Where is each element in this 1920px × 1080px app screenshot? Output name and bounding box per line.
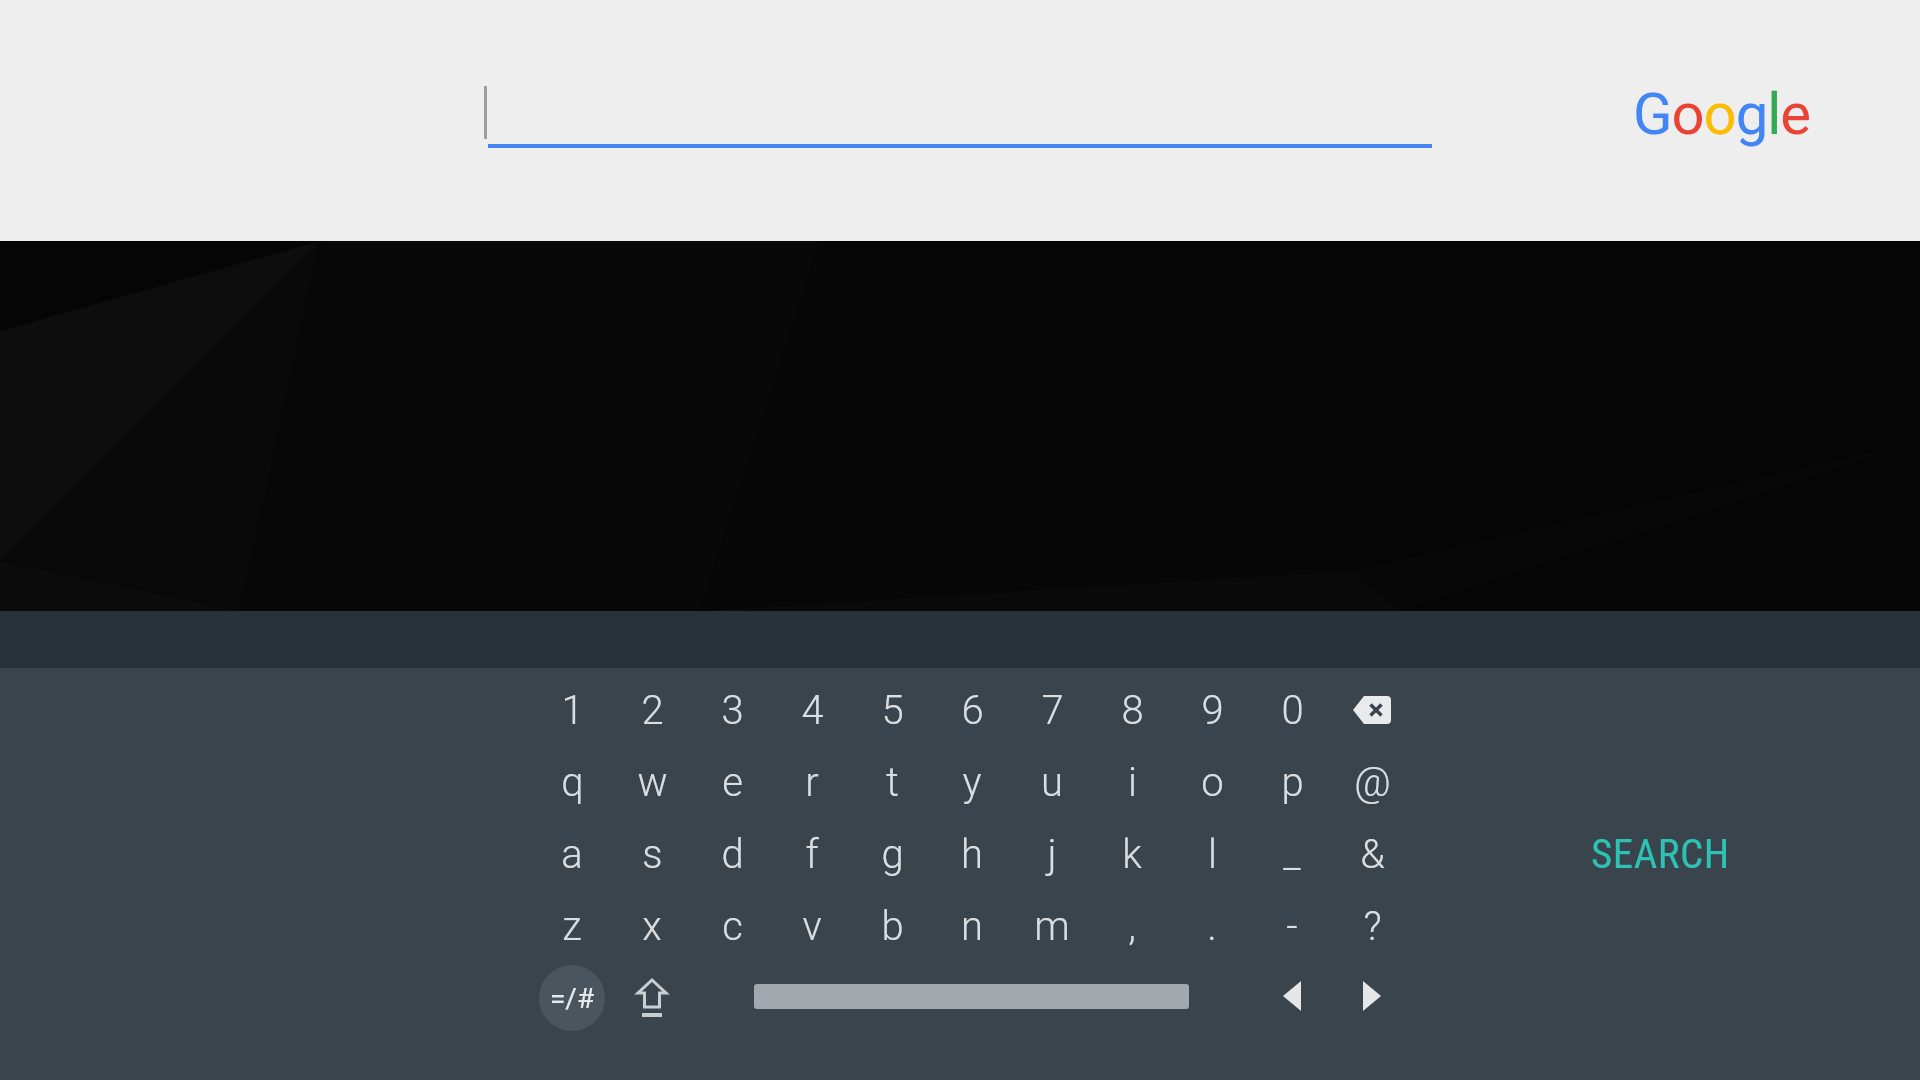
staticText: 9 [1201, 687, 1224, 734]
button[interactable]: i [1092, 746, 1172, 818]
button[interactable]: v [772, 890, 852, 962]
button[interactable]: y [932, 746, 1012, 818]
button[interactable]: c [692, 890, 772, 962]
button[interactable]: 7 [1012, 674, 1092, 746]
staticText: 8 [1121, 687, 1144, 734]
staticText: s [642, 831, 663, 878]
staticText: 3 [721, 687, 744, 734]
button[interactable] [1332, 962, 1412, 1034]
button[interactable]: s [612, 818, 692, 890]
button[interactable]: 6 [932, 674, 1012, 746]
staticText: 0 [1281, 687, 1304, 734]
staticText: i [1128, 759, 1137, 806]
button[interactable]: b [852, 890, 932, 962]
staticText: x [642, 903, 662, 950]
button[interactable]: d [692, 818, 772, 890]
button[interactable]: h [932, 818, 1012, 890]
staticText: z [562, 903, 582, 950]
staticText: , [1128, 903, 1136, 950]
staticText: r [805, 759, 819, 806]
staticText: q [561, 759, 584, 806]
staticText: a [561, 831, 583, 878]
staticText: y [962, 759, 982, 806]
staticText: h [961, 831, 983, 878]
staticText: v [802, 903, 822, 950]
staticText: o [1201, 759, 1224, 806]
button[interactable]: SEARCH [1565, 818, 1755, 890]
button[interactable]: _ [1252, 818, 1332, 890]
button[interactable]: m [1012, 890, 1092, 962]
button[interactable]: z [532, 890, 612, 962]
staticText: 2 [641, 687, 664, 734]
button[interactable]: 4 [772, 674, 852, 746]
staticText: l [1208, 831, 1217, 878]
staticText: 4 [801, 687, 824, 734]
button[interactable]: t [852, 746, 932, 818]
staticText: u [1041, 759, 1063, 806]
staticText: SEARCH [1591, 830, 1730, 878]
button[interactable] [0, 0, 1920, 241]
button[interactable]: u [1012, 746, 1092, 818]
button[interactable]: o [1172, 746, 1252, 818]
staticText: 1 [561, 687, 584, 734]
staticText: m [1034, 903, 1070, 950]
button[interactable]: j [1012, 818, 1092, 890]
staticText: p [1281, 759, 1304, 806]
staticText: k [1122, 831, 1142, 878]
button[interactable]: 1 [532, 674, 612, 746]
staticText: d [721, 831, 744, 878]
button[interactable]: 3 [692, 674, 772, 746]
staticText: & [1360, 831, 1385, 878]
button[interactable]: w [612, 746, 692, 818]
button[interactable]: - [1252, 890, 1332, 962]
staticText: f [805, 831, 819, 878]
button[interactable] [612, 962, 692, 1034]
button[interactable]: a [532, 818, 612, 890]
button[interactable]: f [772, 818, 852, 890]
button[interactable]: l [1172, 818, 1252, 890]
button[interactable]: & [1332, 818, 1412, 890]
button[interactable]: 9 [1172, 674, 1252, 746]
staticText: =/# [550, 982, 595, 1015]
staticText: ? [1363, 903, 1382, 950]
button[interactable]: ? [1332, 890, 1412, 962]
staticText: n [961, 903, 983, 950]
button[interactable]: . [1172, 890, 1252, 962]
button[interactable]: 5 [852, 674, 932, 746]
staticText: 7 [1041, 687, 1064, 734]
staticText: e [722, 759, 743, 806]
button[interactable] [1252, 962, 1332, 1034]
button[interactable] [1332, 674, 1412, 746]
button[interactable]: g [852, 818, 932, 890]
staticText: t [886, 759, 899, 806]
button[interactable]: 0 [1252, 674, 1332, 746]
staticText: . [1207, 903, 1217, 950]
button[interactable]: 2 [612, 674, 692, 746]
staticText: c [722, 903, 743, 950]
staticText: g [881, 831, 904, 878]
button[interactable]: n [932, 890, 1012, 962]
button[interactable]: r [772, 746, 852, 818]
button[interactable]: =/# [539, 965, 605, 1031]
staticText: - [1286, 903, 1298, 950]
staticText: Google [1633, 80, 1811, 148]
button[interactable]: p [1252, 746, 1332, 818]
staticText: j [1047, 831, 1057, 878]
staticText: _ [1283, 831, 1301, 878]
button[interactable]: 8 [1092, 674, 1172, 746]
staticText: 5 [881, 687, 904, 734]
button[interactable]: x [612, 890, 692, 962]
staticText: @ [1354, 759, 1391, 806]
staticText: w [637, 759, 668, 806]
button[interactable]: e [692, 746, 772, 818]
button[interactable]: q [532, 746, 612, 818]
staticText: b [881, 903, 904, 950]
button[interactable]: , [1092, 890, 1172, 962]
button[interactable]: @ [1332, 746, 1412, 818]
button[interactable]: k [1092, 818, 1172, 890]
staticText: 6 [961, 687, 984, 734]
